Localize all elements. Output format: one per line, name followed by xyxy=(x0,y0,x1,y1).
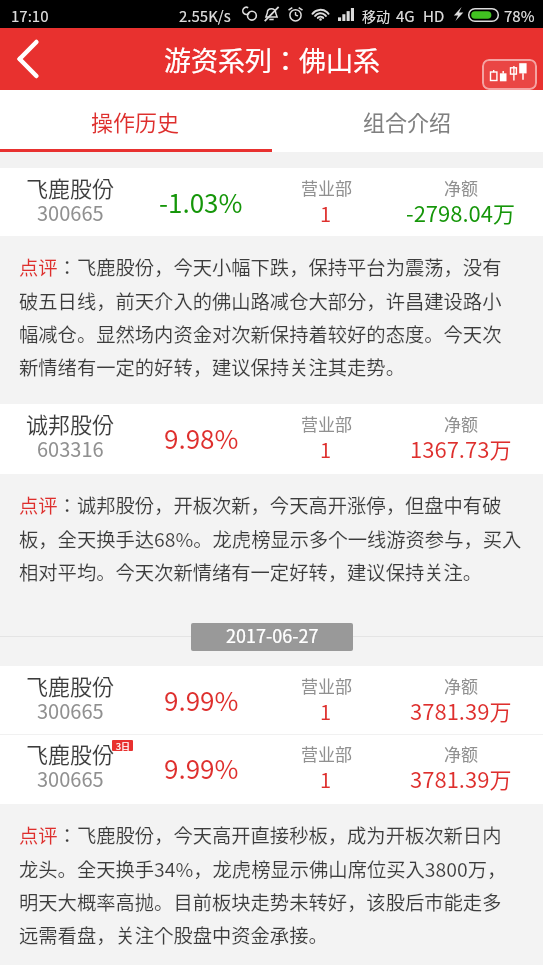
staticText: 300665 xyxy=(37,696,104,725)
staticText: 点评：诚邦股份，开板次新，今天高开涨停，但盘中有破 板，全天换手达68%。龙虎榜… xyxy=(19,491,522,585)
staticText: 9.98% xyxy=(164,419,239,457)
button[interactable]: 点评：飞鹿股份，今天小幅下跌，保持平台为震荡，没有 破五日线，前天介入的佛山路减… xyxy=(0,236,543,404)
button[interactable]: 诚邦股份 xyxy=(0,404,543,474)
staticText: 营业部 xyxy=(301,175,352,200)
staticText: 点评：飞鹿股份，今天小幅下跌，保持平台为震荡，没有 破五日线，前天介入的佛山路减… xyxy=(19,253,502,380)
button[interactable]: 组合介绍 xyxy=(271,90,543,152)
staticText: 1 xyxy=(320,199,332,228)
staticText: 300665 xyxy=(37,198,104,227)
button[interactable]: 飞鹿股份 xyxy=(0,168,543,236)
staticText: 3781.39万 xyxy=(410,762,512,794)
staticText: 1 xyxy=(320,697,332,726)
staticText: 点评：飞鹿股份，今天高开直接秒板，成为开板次新日内 龙头。全天换手34%，龙虎榜… xyxy=(19,821,507,948)
button[interactable]: 操作历史 xyxy=(0,90,271,152)
staticText: HD xyxy=(423,5,445,27)
staticText: 游资系列：佛山系 xyxy=(164,40,380,79)
staticText: 3日 xyxy=(116,740,130,751)
button[interactable]: 点评：飞鹿股份，今天高开直接秒板，成为开板次新日内 龙头。全天换手34%，龙虎榜… xyxy=(0,804,543,965)
staticText: 营业部 xyxy=(301,411,352,436)
staticText: 300665 xyxy=(37,764,104,793)
staticText: 操作历史 xyxy=(91,105,180,137)
staticText: 2.55K/s xyxy=(179,5,231,27)
staticText: 603316 xyxy=(37,434,104,463)
staticText: 飞鹿股份 xyxy=(26,171,115,203)
staticText: 3781.39万 xyxy=(410,694,512,726)
staticText: 9.99% xyxy=(164,749,239,787)
button[interactable]: Back xyxy=(0,31,56,87)
staticText: 诚邦股份 xyxy=(26,407,115,439)
staticText: 营业部 xyxy=(301,741,352,766)
staticText: 1 xyxy=(320,435,332,464)
staticText: 飞鹿股份 xyxy=(26,669,115,701)
button[interactable]: 点评：诚邦股份，开板次新，今天高开涨停，但盘中有破 板，全天换手达68%。龙虎榜… xyxy=(0,474,543,607)
staticText: 组合介绍 xyxy=(363,105,452,137)
staticText: -2798.04万 xyxy=(406,196,516,228)
staticText: 净额 xyxy=(444,411,478,436)
button[interactable]: 飞鹿股份 xyxy=(0,734,543,804)
staticText: 净额 xyxy=(444,673,478,698)
staticText: 78% xyxy=(504,5,535,27)
staticText: 4G xyxy=(396,5,415,27)
staticText: 2017-06-27 xyxy=(226,623,319,648)
staticText: 净额 xyxy=(444,175,478,200)
staticText: -1.03% xyxy=(159,183,243,221)
staticText: 营业部 xyxy=(301,673,352,698)
button[interactable]: 飞鹿股份 xyxy=(0,666,543,734)
button[interactable]: K线图 xyxy=(482,59,537,90)
staticText: 1 xyxy=(320,765,332,794)
staticText: 17:10 xyxy=(11,5,49,27)
staticText: 移动 xyxy=(362,6,390,26)
staticText: 净额 xyxy=(444,741,478,766)
staticText: 9.99% xyxy=(164,681,239,719)
staticText: 1367.73万 xyxy=(410,432,512,464)
staticText: 飞鹿股份 xyxy=(26,737,115,769)
